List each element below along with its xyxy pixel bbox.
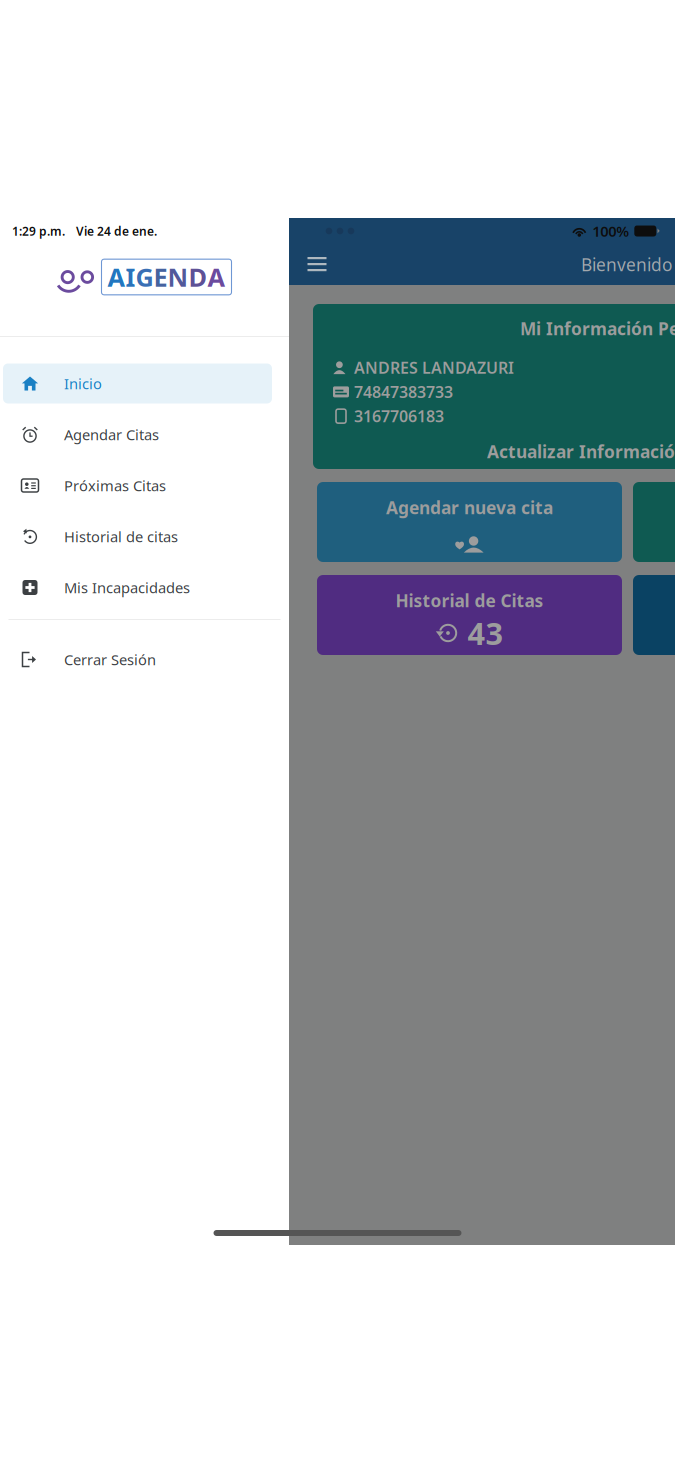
button[interactable]: Historial de Citas <box>317 575 622 655</box>
staticText: G <box>135 260 153 294</box>
staticText: D <box>188 260 207 294</box>
staticText: Actualizar Información Personal <box>487 440 675 463</box>
staticText: E <box>153 260 167 294</box>
button[interactable]: Mis Incapacidades <box>0 562 289 613</box>
staticText: A <box>107 260 125 294</box>
staticText: Agendar Citas <box>64 425 159 444</box>
staticText: Historial de Citas <box>395 589 543 612</box>
button[interactable]: Inicio <box>0 358 289 409</box>
staticText: Historial de citas <box>64 527 178 546</box>
staticText: 43 <box>467 613 503 653</box>
button[interactable]: Abrir menú <box>289 245 345 283</box>
staticText: N <box>167 260 188 294</box>
staticText: Mi Información Personal <box>520 317 675 340</box>
button[interactable] <box>633 482 675 562</box>
staticText: Cerrar Sesión <box>64 650 156 669</box>
staticText: Inicio <box>64 374 102 393</box>
staticText: Mis Incapacidades <box>64 578 190 597</box>
staticText: 100% <box>592 221 629 241</box>
button[interactable]: Cerrar Sesión <box>0 634 289 685</box>
staticText: A <box>207 260 225 294</box>
staticText: 74847383733 <box>354 381 453 402</box>
button[interactable]: Próximas Citas <box>0 460 289 511</box>
staticText: 1:29 p.m. <box>12 223 65 239</box>
button[interactable] <box>633 575 675 655</box>
staticText: Agendar nueva cita <box>386 496 553 519</box>
button[interactable]: Agendar Citas <box>0 409 289 460</box>
staticText: ANDRES LANDAZURI <box>354 357 514 378</box>
staticText: I <box>125 260 135 294</box>
staticText: Bienvenido <box>581 253 672 276</box>
staticText: Vie 24 de ene. <box>76 223 157 239</box>
staticText: 3167706183 <box>354 405 444 427</box>
button[interactable]: Historial de citas <box>0 511 289 562</box>
button[interactable]: Agendar nueva cita <box>317 482 622 562</box>
staticText: Próximas Citas <box>64 476 166 495</box>
